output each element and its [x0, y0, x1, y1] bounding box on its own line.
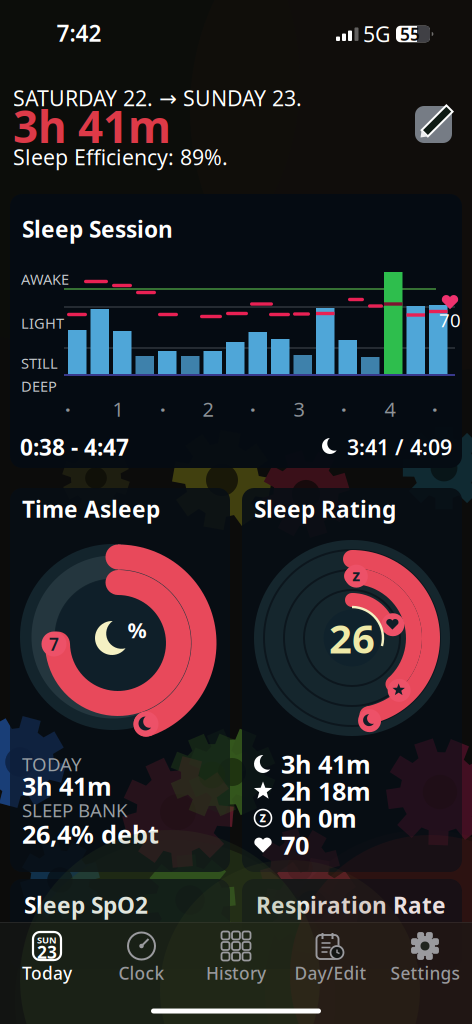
- staticText: 55: [400, 22, 420, 45]
- staticText: 5G: [363, 20, 391, 48]
- staticText: 3h 41m: [22, 769, 112, 803]
- staticText: 3: [293, 396, 304, 422]
- staticText: ·: [250, 396, 256, 422]
- button[interactable]: Day/Edit: [283, 920, 377, 986]
- staticText: SUN: [37, 934, 57, 946]
- staticText: ·: [160, 396, 166, 422]
- staticText: 3h 41m: [281, 747, 371, 781]
- staticText: Today: [22, 961, 72, 984]
- button[interactable]: Sleep Rating: [242, 488, 462, 872]
- button[interactable]: Edit: [411, 102, 455, 146]
- staticText: 7:42: [56, 18, 101, 48]
- button[interactable]: Clock: [94, 920, 188, 986]
- staticText: LIGHT: [21, 313, 64, 333]
- staticText: Settings: [390, 961, 459, 984]
- staticText: Time Asleep: [22, 494, 160, 524]
- staticText: 1: [112, 396, 123, 422]
- staticText: %: [127, 616, 146, 644]
- staticText: ·: [432, 396, 438, 422]
- staticText: Sleep Efficiency: 89%.: [13, 143, 228, 171]
- button[interactable]: Settings: [378, 920, 472, 986]
- staticText: Sleep SpO2: [24, 890, 148, 920]
- staticText: DEEP: [21, 376, 57, 396]
- staticText: STILL: [21, 353, 58, 373]
- button[interactable]: History: [189, 920, 283, 986]
- staticText: 2h 18m: [281, 774, 371, 808]
- staticText: Sleep Rating: [254, 494, 396, 524]
- staticText: 3h 41m: [13, 97, 171, 155]
- staticText: 26,4% debt: [22, 817, 159, 851]
- staticText: 70: [439, 308, 461, 332]
- staticText: 70: [281, 828, 309, 862]
- staticText: SATURDAY 22. → SUNDAY 23.: [13, 84, 302, 112]
- button[interactable]: Time Asleep: [10, 488, 230, 872]
- staticText: 23: [37, 940, 57, 963]
- button[interactable]: SUN: [0, 920, 94, 986]
- staticText: 0h 0m: [281, 801, 357, 835]
- staticText: 0:38 - 4:47: [20, 432, 129, 462]
- staticText: z: [259, 808, 266, 826]
- staticText: z: [352, 564, 360, 586]
- staticText: AWAKE: [21, 269, 69, 289]
- button[interactable]: Sleep Session: [10, 194, 462, 468]
- staticText: TODAY: [22, 752, 82, 776]
- staticText: 7: [49, 632, 59, 655]
- staticText: 3:41 / 4:09: [347, 433, 452, 461]
- staticText: 4: [384, 396, 395, 422]
- staticText: SLEEP BANK: [22, 798, 128, 822]
- staticText: ·: [65, 396, 71, 422]
- staticText: ·: [341, 396, 347, 422]
- staticText: Clock: [118, 961, 164, 984]
- staticText: 2: [202, 396, 213, 422]
- button[interactable]: Sleep SpO2: [10, 879, 230, 969]
- staticText: Sleep Session: [22, 214, 173, 244]
- button[interactable]: Respiration Rate: [242, 879, 462, 969]
- staticText: History: [206, 961, 266, 984]
- staticText: Day/Edit: [294, 961, 366, 984]
- staticText: Respiration Rate: [256, 890, 446, 920]
- staticText: 26: [329, 611, 375, 664]
